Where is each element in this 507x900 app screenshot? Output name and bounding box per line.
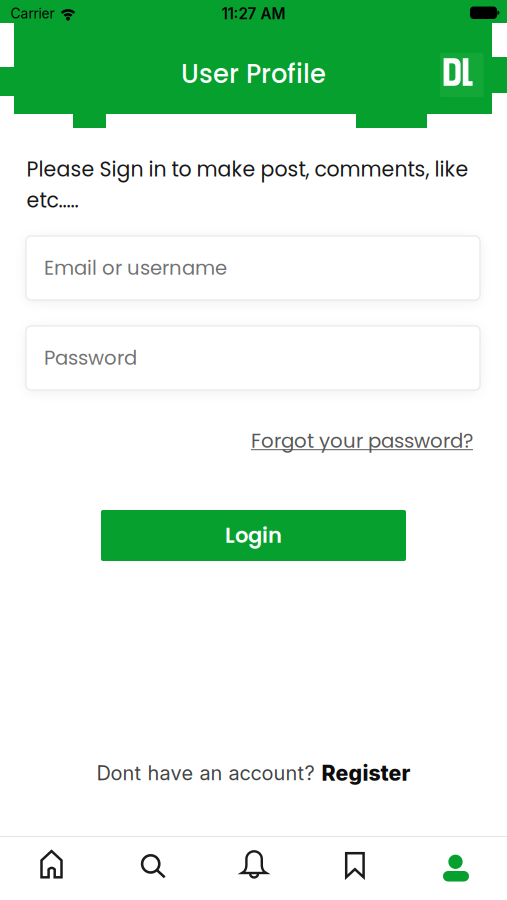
- staticText: Forgot your password?: [251, 427, 473, 455]
- button[interactable]: Register: [321, 760, 410, 786]
- button[interactable]: Profile: [406, 836, 507, 900]
- button[interactable]: Bookmarks: [304, 836, 406, 900]
- button[interactable]: Forgot your password?: [251, 427, 473, 455]
- button[interactable]: Password: [26, 326, 480, 390]
- staticText: Register: [321, 760, 410, 786]
- staticText: Dont have an account?: [96, 761, 314, 785]
- staticText: etc.....: [26, 186, 78, 215]
- button[interactable]: Login: [101, 510, 406, 561]
- staticText: Login: [225, 521, 282, 550]
- button[interactable]: DL logo: [440, 53, 483, 97]
- button[interactable]: Search: [101, 836, 203, 900]
- staticText: Please Sign in to make post, comments, l…: [26, 155, 468, 184]
- staticText: User Profile: [181, 56, 326, 92]
- staticText: Carrier: [10, 5, 54, 22]
- staticText: 11:27 AM: [221, 4, 285, 23]
- staticText: Email or username: [44, 254, 227, 282]
- staticText: Password: [44, 344, 137, 372]
- button[interactable]: Home: [0, 836, 101, 900]
- button[interactable]: Email or username: [26, 236, 480, 300]
- button[interactable]: Notifications: [203, 836, 304, 900]
